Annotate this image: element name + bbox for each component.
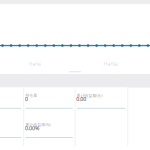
staticText: 0.00%: [25, 125, 39, 132]
staticText: 累计收益额(元): [76, 93, 102, 98]
staticText: 11月15日: [104, 63, 118, 66]
button[interactable]: [0, 117, 23, 146]
staticText: 0.00: [76, 95, 86, 102]
button[interactable]: 累计收益额(元): [75, 87, 127, 117]
staticText: 0: [25, 95, 28, 102]
staticText: 累计收益率(%): [25, 122, 50, 127]
staticText: 持仓量: [25, 93, 37, 98]
staticText: 11月1日: [29, 63, 41, 66]
button[interactable]: 累计收益率(%): [23, 117, 75, 146]
button[interactable]: 持仓量: [23, 87, 75, 117]
button[interactable]: [0, 87, 23, 117]
